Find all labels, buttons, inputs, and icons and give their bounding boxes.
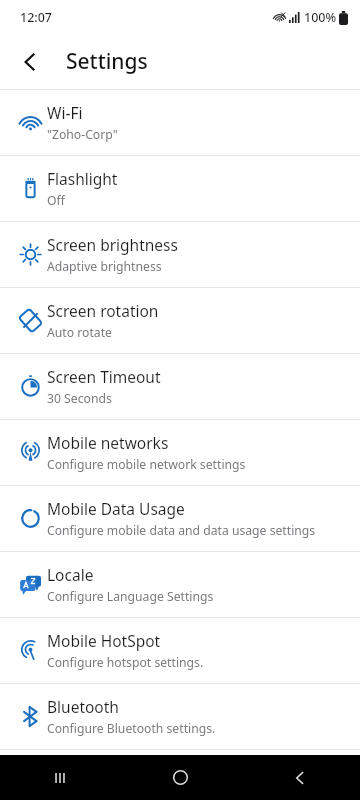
staticText: Mobile HotSpot (47, 630, 161, 651)
button[interactable]: Mobile networks (0, 420, 360, 485)
button[interactable]: Recents (0, 755, 120, 800)
staticText: Settings (66, 47, 148, 76)
staticText: Configure hotspot settings. (47, 654, 204, 671)
staticText: 12:07 (20, 9, 53, 26)
button[interactable]: Mobile Data Usage (0, 486, 360, 551)
button[interactable]: Screen brightness (0, 222, 360, 287)
staticText: Screen Timeout (47, 366, 161, 387)
button[interactable]: Screen Timeout (0, 354, 360, 419)
staticText: "Zoho-Corp" (47, 126, 118, 143)
button[interactable]: Home (120, 755, 240, 800)
button[interactable]: Wi-Fi (0, 90, 360, 155)
button[interactable]: Locale (0, 552, 360, 617)
staticText: Mobile networks (47, 432, 169, 453)
button[interactable]: Flashlight (0, 156, 360, 221)
staticText: Locale (47, 564, 94, 585)
button[interactable]: Screen rotation (0, 288, 360, 353)
staticText: Configure mobile network settings (47, 456, 246, 473)
button[interactable]: Mobile HotSpot (0, 618, 360, 683)
staticText: Wi-Fi (47, 102, 83, 123)
staticText: Screen rotation (47, 300, 159, 321)
staticText: Mobile Data Usage (47, 498, 185, 519)
staticText: Configure Language Settings (47, 588, 214, 605)
staticText: Configure mobile data and data usage set… (47, 522, 316, 539)
staticText: 100% (304, 9, 337, 26)
staticText: Auto rotate (47, 324, 112, 341)
staticText: Adaptive brightness (47, 258, 162, 275)
staticText: Bluetooth (47, 696, 119, 717)
staticText: Off (47, 192, 65, 209)
button[interactable]: Bluetooth (0, 684, 360, 749)
staticText: Screen brightness (47, 234, 178, 255)
staticText: Configure Bluetooth settings. (47, 720, 216, 737)
staticText: Flashlight (47, 168, 118, 189)
button[interactable]: Back (8, 40, 52, 84)
button[interactable]: Back (240, 755, 360, 800)
staticText: 30 Seconds (47, 390, 112, 407)
